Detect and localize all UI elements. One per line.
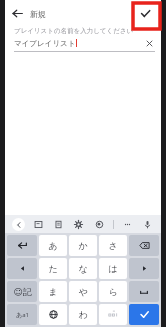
- button[interactable]: Space: [129, 281, 159, 302]
- button[interactable]: Done: [137, 5, 154, 22]
- button[interactable]: Backspace: [129, 235, 159, 256]
- staticText: あa1: [16, 311, 29, 319]
- staticText: か: [78, 240, 88, 251]
- staticText: プレイリストの名前を入力してください: [14, 27, 134, 35]
- button[interactable]: ま: [39, 281, 67, 302]
- button[interactable]: Stickers: [32, 218, 45, 231]
- button[interactable]: Clear text: [143, 37, 155, 49]
- button[interactable]: Enter: [129, 304, 159, 325]
- button[interactable]: あa1: [7, 304, 37, 325]
- staticText: ら: [108, 286, 118, 297]
- button[interactable]: Settings: [72, 218, 85, 231]
- button[interactable]: ☺記: [7, 281, 37, 302]
- staticText: た: [48, 263, 58, 274]
- button[interactable]: More options: [121, 218, 134, 231]
- staticText: マイプレイリスト: [14, 39, 76, 48]
- staticText: 新規: [30, 9, 46, 19]
- button[interactable]: わ: [69, 304, 97, 325]
- button[interactable]: か: [69, 235, 97, 256]
- button[interactable]: Move cursor left: [7, 258, 37, 279]
- button[interactable]: Switch language: [39, 304, 67, 325]
- button[interactable]: は: [99, 258, 127, 279]
- button[interactable]: Clipboard: [52, 218, 65, 231]
- staticText: ま: [48, 286, 58, 297]
- button[interactable]: な: [69, 258, 97, 279]
- button[interactable]: Undo: [7, 235, 37, 256]
- button[interactable]: や: [69, 281, 97, 302]
- staticText: は: [108, 263, 118, 274]
- button[interactable]: Collapse toolbar: [12, 218, 25, 231]
- staticText: あ: [48, 240, 58, 251]
- staticText: わ: [78, 309, 88, 320]
- button[interactable]: Voice input: [141, 218, 154, 231]
- button[interactable]: ら: [99, 281, 127, 302]
- staticText: さ: [108, 240, 118, 251]
- staticText: ☺記: [13, 286, 32, 297]
- button[interactable]: Themes: [93, 218, 106, 231]
- button[interactable]: あ: [39, 235, 67, 256]
- button[interactable]: Punctuation: [99, 304, 127, 325]
- button[interactable]: た: [39, 258, 67, 279]
- button[interactable]: Move cursor right: [129, 258, 159, 279]
- button[interactable]: さ: [99, 235, 127, 256]
- staticText: な: [78, 263, 88, 274]
- button[interactable]: Back: [9, 5, 26, 22]
- staticText: や: [78, 286, 88, 297]
